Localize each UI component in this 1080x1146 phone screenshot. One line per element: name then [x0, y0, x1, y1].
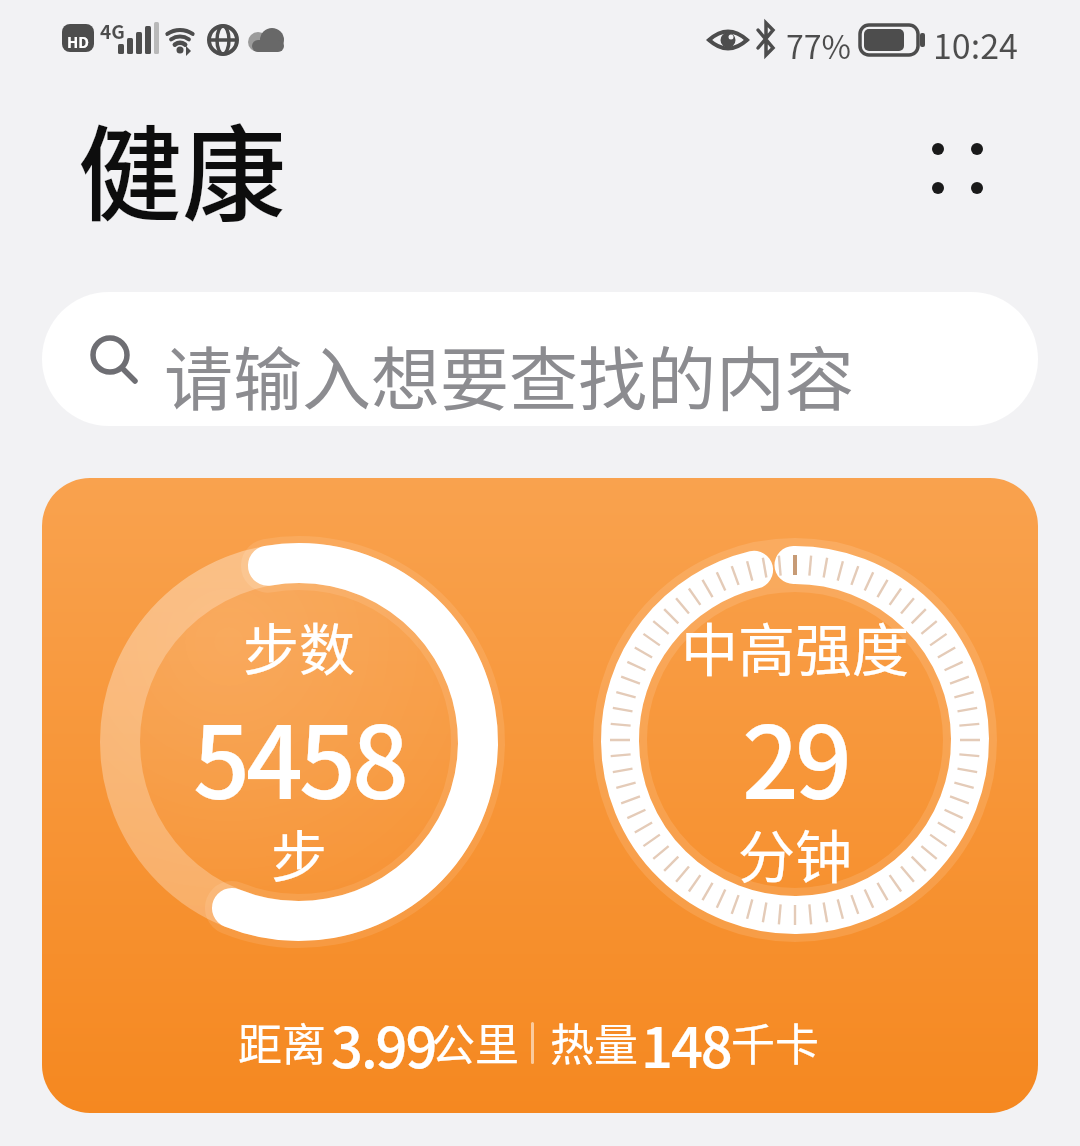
- staticText: 健康: [78, 92, 287, 243]
- staticText: 29: [742, 683, 848, 803]
- button[interactable]: 步数: [42, 478, 1038, 1113]
- staticText: 148: [641, 1003, 731, 1073]
- staticText: 分钟: [738, 812, 852, 892]
- staticText: 距离: [238, 1010, 326, 1074]
- staticText: 公里: [431, 1010, 519, 1074]
- staticText: 步: [271, 812, 327, 892]
- staticText: 热量: [550, 1010, 638, 1074]
- staticText: 4G: [100, 17, 125, 45]
- button[interactable]: 健康: [78, 92, 287, 243]
- staticText: 77%: [786, 22, 851, 68]
- staticText: 5458: [193, 683, 405, 803]
- staticText: 中高强度: [681, 605, 909, 685]
- staticText: 请输入想要查找的内容: [164, 325, 854, 425]
- staticText: 3.99: [331, 1003, 436, 1073]
- staticText: 10:24: [933, 20, 1018, 69]
- button[interactable]: 请输入想要查找的内容: [42, 292, 1038, 426]
- button[interactable]: [920, 132, 996, 208]
- staticText: 千卡: [731, 1010, 819, 1074]
- staticText: HD: [67, 31, 90, 53]
- staticText: 步数: [243, 605, 355, 685]
